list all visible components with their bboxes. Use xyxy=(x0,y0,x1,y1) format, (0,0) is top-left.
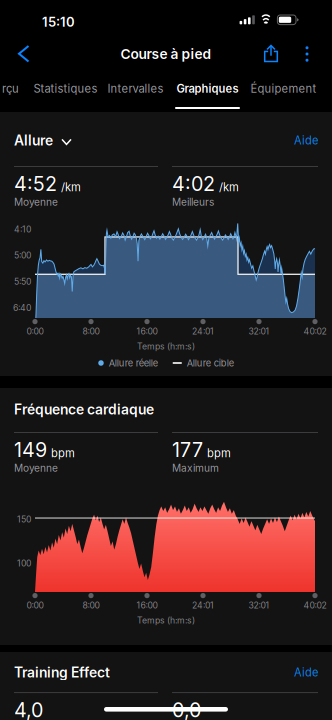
staticText: Moyenne xyxy=(14,462,58,474)
staticText: 15:10 xyxy=(42,14,75,30)
staticText: 150 xyxy=(17,514,31,524)
staticText: 40:02 xyxy=(303,326,326,337)
staticText: bpm xyxy=(207,446,231,460)
staticText: 16:00 xyxy=(136,326,157,337)
staticText: 4,0 xyxy=(14,698,43,720)
staticText: Meilleurs xyxy=(172,196,214,208)
staticText: 8:00 xyxy=(82,600,99,611)
staticText: Temps (h:m:s) xyxy=(137,615,195,625)
staticText: Fréquence cardiaque xyxy=(14,401,154,418)
staticText: 5:50 xyxy=(14,276,31,287)
staticText: 4:52 xyxy=(14,172,57,196)
button[interactable]: Back xyxy=(0,44,40,63)
staticText: Aide xyxy=(294,134,318,147)
staticText: rçu xyxy=(2,82,19,96)
staticText: Maximum xyxy=(172,462,219,474)
staticText: 177 xyxy=(172,438,203,462)
staticText: 6:40 xyxy=(13,302,31,313)
staticText: 16:00 xyxy=(136,600,157,611)
button[interactable]: Intervalles xyxy=(106,82,165,109)
staticText: /km xyxy=(219,180,239,194)
staticText: 4:10 xyxy=(14,224,31,234)
staticText: /km xyxy=(61,180,81,194)
staticText: Graphiques xyxy=(176,82,238,96)
button[interactable]: Graphiques xyxy=(175,82,240,109)
staticText: Training Effect xyxy=(14,664,110,681)
staticText: 24:01 xyxy=(192,600,214,611)
staticText: 5:00 xyxy=(14,250,31,261)
staticText: 24:01 xyxy=(192,326,214,337)
staticText: 4:02 xyxy=(172,172,215,196)
staticText: 0:00 xyxy=(26,600,43,611)
button[interactable]: rçu xyxy=(1,82,20,109)
staticText: Statistiques xyxy=(33,82,97,96)
button[interactable]: Aide xyxy=(294,134,318,147)
button[interactable]: Share xyxy=(264,45,278,62)
button[interactable]: More options xyxy=(299,46,315,62)
staticText: Allure xyxy=(14,132,53,149)
staticText: Intervalles xyxy=(107,82,163,96)
button[interactable]: Statistiques xyxy=(32,82,99,109)
staticText: 40:02 xyxy=(303,600,326,611)
staticText: Moyenne xyxy=(14,196,58,208)
staticText: 0:00 xyxy=(26,326,43,337)
staticText: Aide xyxy=(294,666,318,679)
staticText: 149 xyxy=(14,438,47,462)
staticText: Temps (h:m:s) xyxy=(137,341,195,351)
staticText: 0,0 xyxy=(172,698,201,720)
staticText: 32:01 xyxy=(248,600,269,611)
staticText: 32:01 xyxy=(248,326,269,337)
button[interactable]: Équipement xyxy=(250,82,317,109)
staticText: bpm xyxy=(51,446,75,460)
staticText: Allure réelle xyxy=(109,357,158,369)
staticText: Équipement xyxy=(250,82,316,96)
staticText: 100 xyxy=(17,558,31,568)
staticText: Allure cible xyxy=(187,357,234,369)
staticText: Course à pied xyxy=(120,46,211,62)
button[interactable]: Aide xyxy=(294,666,318,679)
staticText: 8:00 xyxy=(82,326,99,337)
